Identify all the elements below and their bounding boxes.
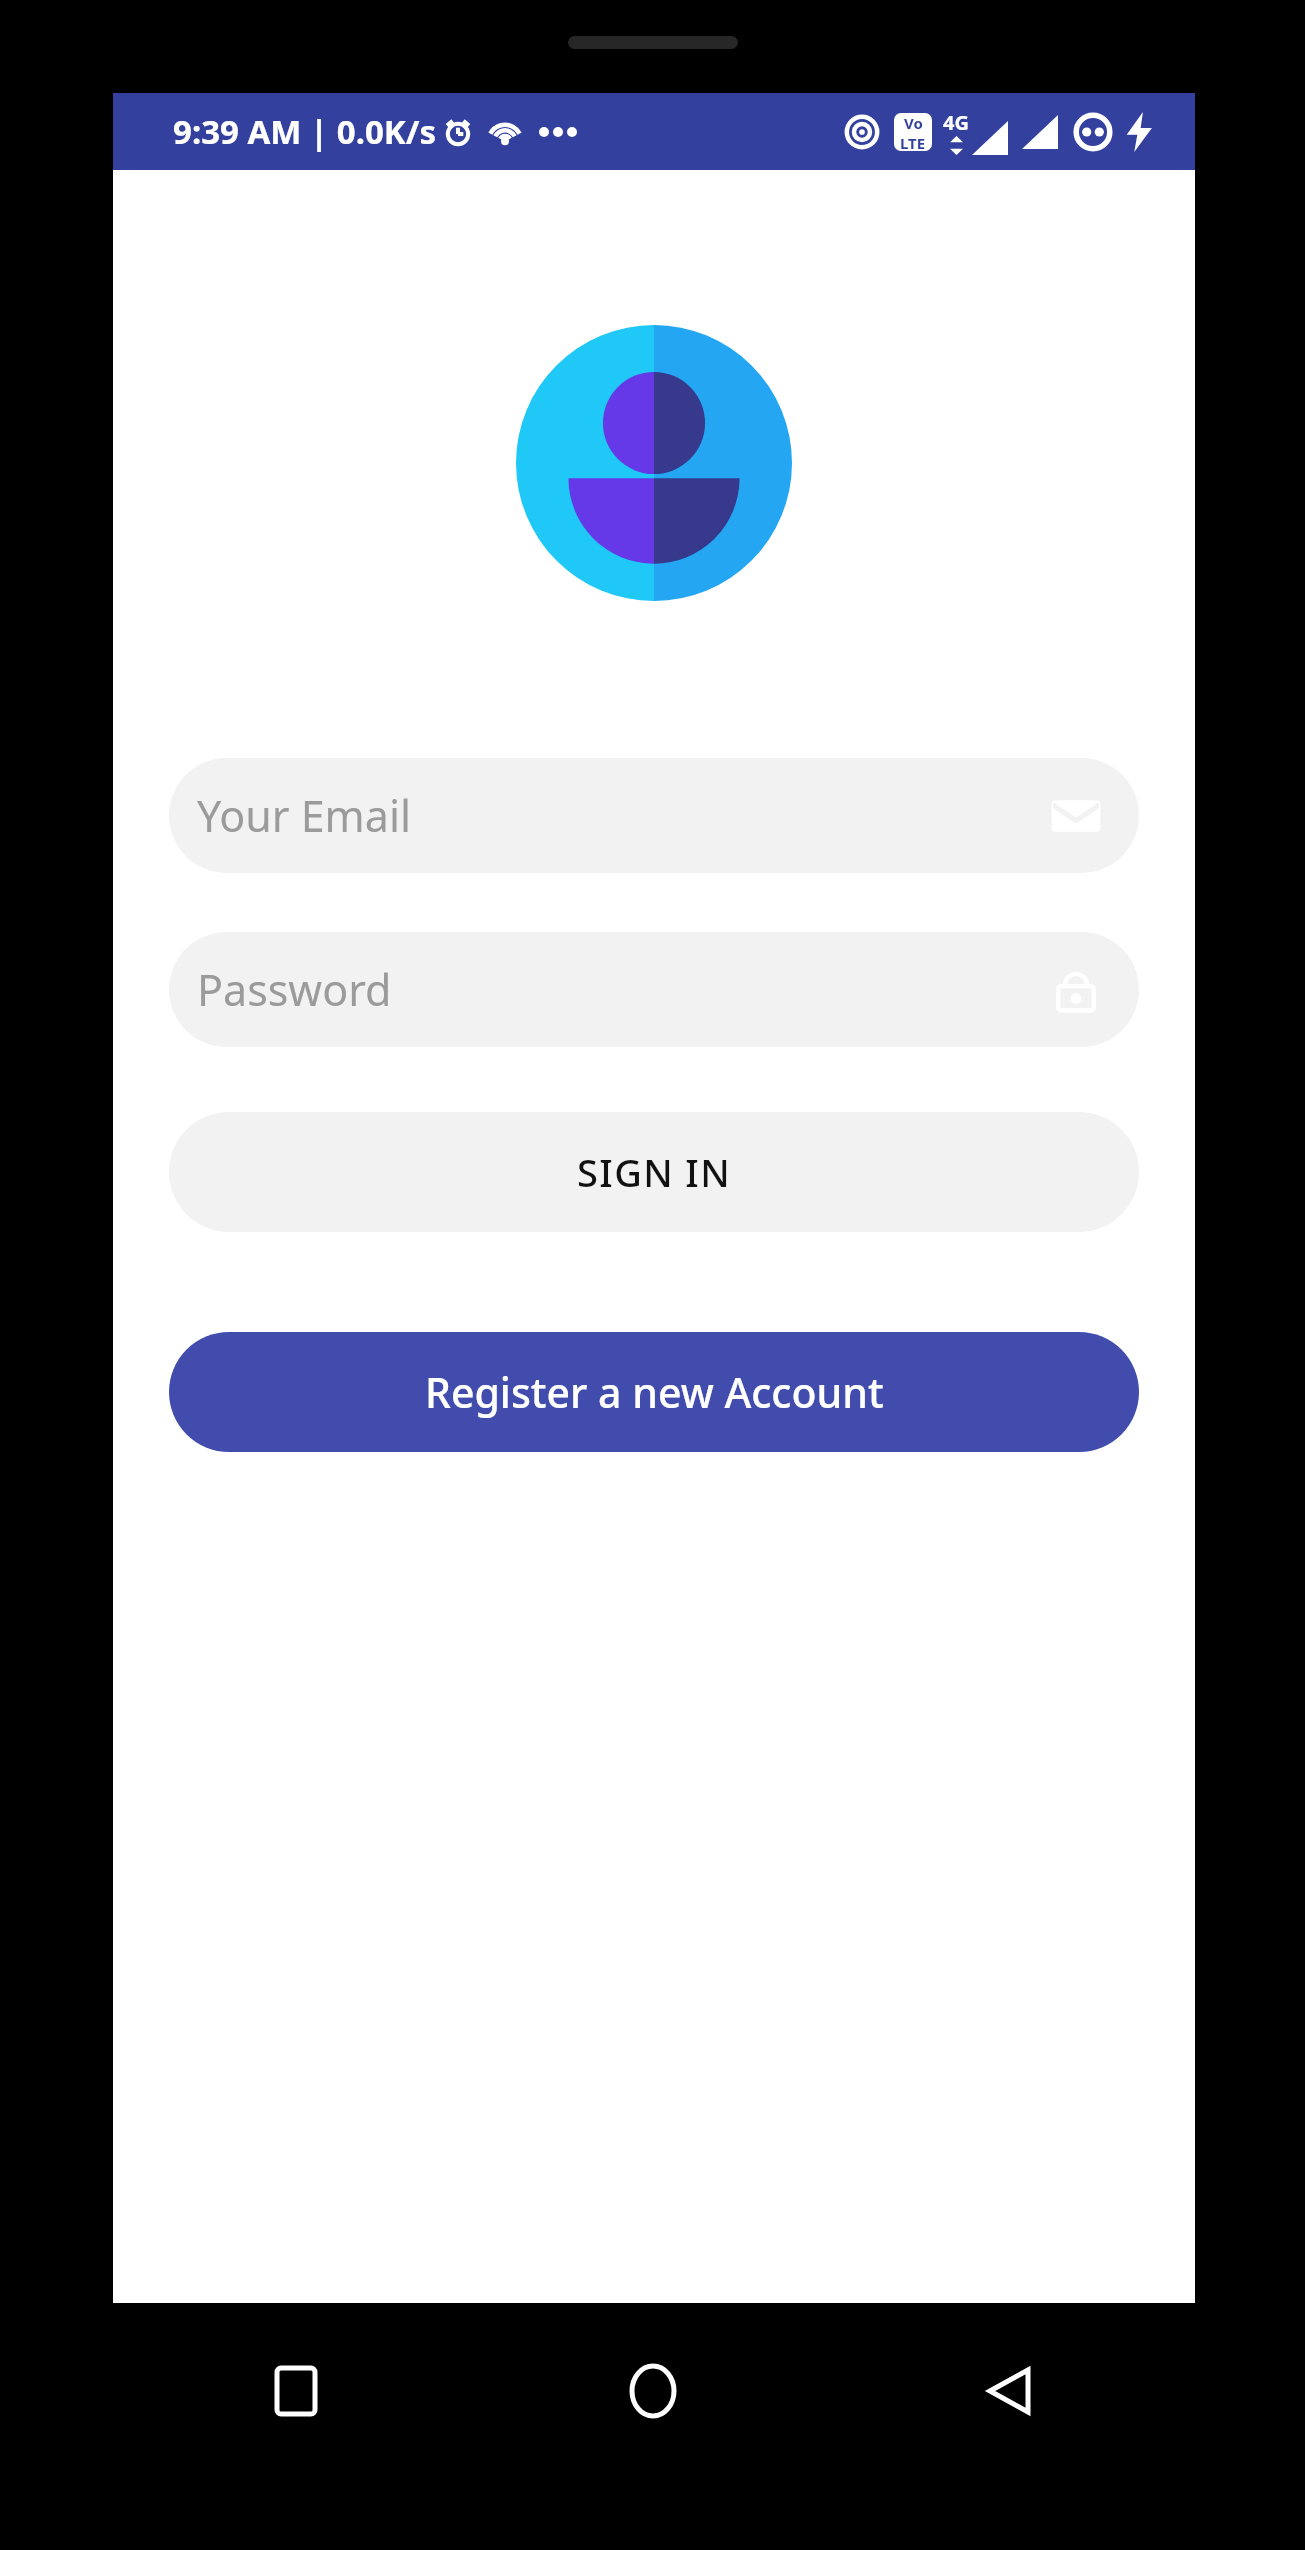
- button[interactable]: Back: [949, 2331, 1069, 2451]
- button[interactable]: Recent apps: [236, 2331, 356, 2451]
- staticText: Register a new Account: [425, 1364, 884, 1420]
- button[interactable]: Email address: [169, 758, 1139, 873]
- staticText: Your Email: [197, 786, 412, 845]
- button[interactable]: SIGN IN: [169, 1112, 1139, 1232]
- staticText: Password: [197, 960, 392, 1019]
- staticText: 4G: [943, 109, 969, 136]
- button[interactable]: Register a new Account: [169, 1332, 1139, 1452]
- staticText: SIGN IN: [577, 1146, 732, 1198]
- button[interactable]: Home: [593, 2331, 713, 2451]
- staticText: LTE: [900, 133, 926, 151]
- button[interactable]: Password: [169, 932, 1139, 1047]
- staticText: Vo: [904, 113, 923, 133]
- staticText: 9:39 AM | 0.0K/s: [173, 109, 436, 154]
